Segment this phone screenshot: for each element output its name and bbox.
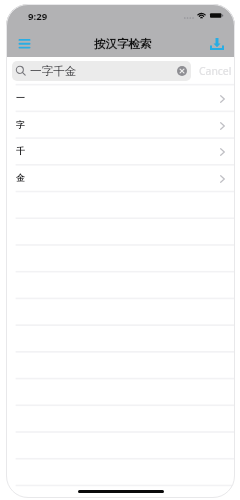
staticText: Cancel bbox=[199, 64, 232, 78]
staticText: 字 bbox=[16, 120, 25, 131]
staticText: 按汉字检索 bbox=[94, 37, 152, 51]
button[interactable]: Menu bbox=[10, 31, 37, 56]
staticText: 金 bbox=[16, 173, 25, 184]
button[interactable]: Cancel bbox=[196, 61, 229, 80]
button[interactable]: 一 bbox=[6, 85, 235, 112]
button[interactable]: Download bbox=[203, 31, 229, 56]
button[interactable]: 字 bbox=[6, 112, 235, 139]
staticText: 一 bbox=[16, 93, 25, 104]
staticText: 9:29 bbox=[28, 10, 48, 23]
staticText: 一字千金 bbox=[30, 64, 77, 79]
button[interactable]: 千 bbox=[6, 138, 235, 165]
button[interactable]: Clear text bbox=[177, 66, 187, 76]
button[interactable]: 一字千金 bbox=[12, 61, 191, 81]
button[interactable]: 金 bbox=[6, 165, 235, 192]
staticText: 千 bbox=[16, 146, 25, 157]
